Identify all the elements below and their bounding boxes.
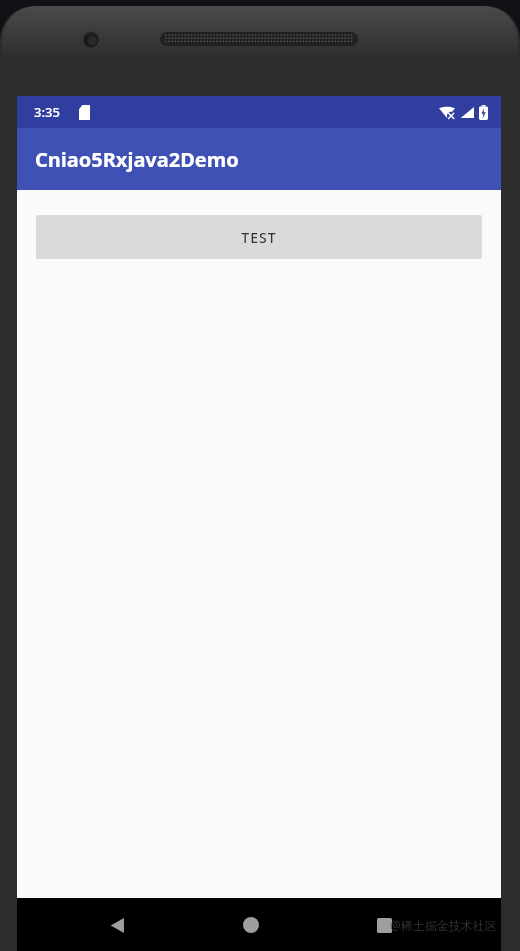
button[interactable]: Home — [227, 901, 275, 949]
staticText: @稀土掘金技术社区 — [390, 917, 497, 933]
button[interactable]: TEST — [36, 215, 482, 259]
staticText: TEST — [241, 228, 277, 247]
button[interactable]: Back — [93, 901, 141, 949]
button[interactable]: Recent apps — [360, 901, 408, 949]
staticText: Cniao5Rxjava2Demo — [35, 146, 239, 173]
staticText: 3:35 — [34, 103, 60, 121]
